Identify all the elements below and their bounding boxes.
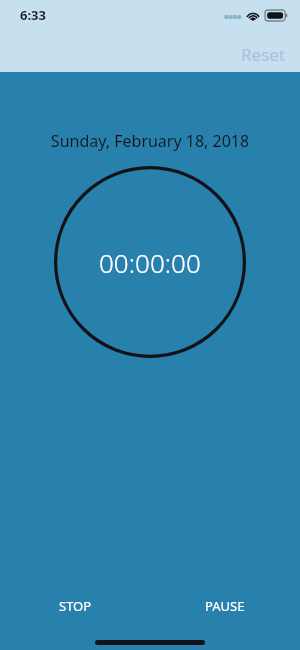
staticText: Sunday, February 18, 2018 [0,130,300,152]
staticText: STOP [59,597,92,615]
staticText: 6:33 [20,6,46,24]
button[interactable]: Timer [54,166,246,358]
staticText: Reset [241,43,286,66]
staticText: PAUSE [205,597,245,615]
button[interactable]: Reset [227,37,300,72]
button[interactable]: PAUSE [183,589,267,623]
staticText: 00:00:00 [99,245,201,280]
button[interactable]: STOP [37,589,114,623]
